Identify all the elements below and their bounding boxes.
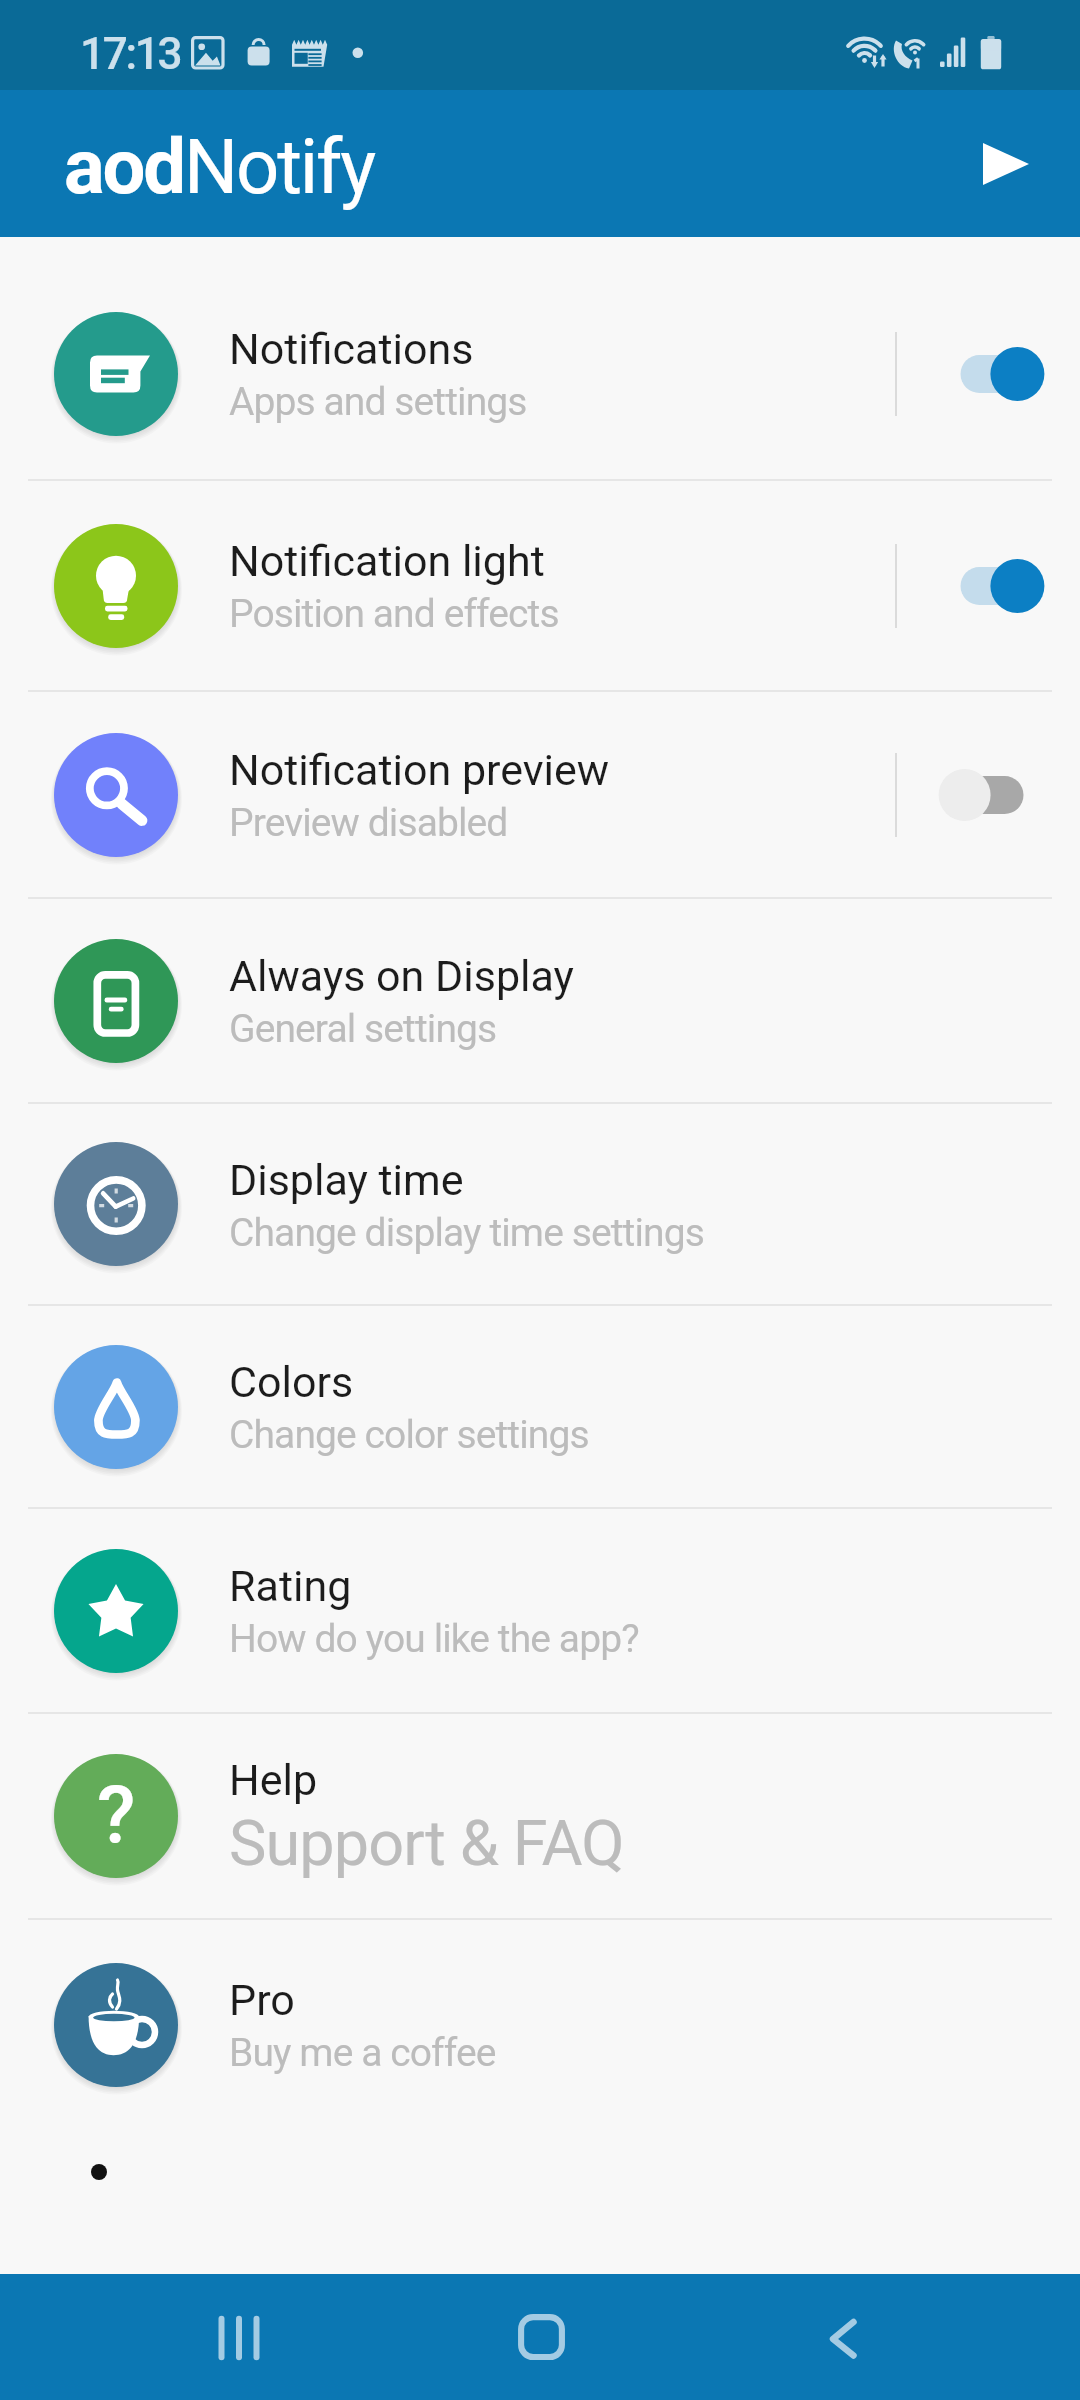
button[interactable]: Always on Display [0,899,1080,1102]
button[interactable]: Rating [0,1509,1080,1712]
button[interactable]: Toggle Notification light [897,544,1080,628]
button[interactable]: Display time [0,1104,1080,1304]
staticText: Preview disabled [229,796,508,847]
staticText: aod [64,122,184,211]
button[interactable]: Play [954,112,1058,216]
button[interactable]: Home [360,2274,720,2400]
staticText: General settings [229,1002,497,1053]
staticText: Change color settings [229,1408,589,1459]
button[interactable]: Toggle Notifications [897,332,1080,416]
button[interactable]: Back [720,2274,1080,2400]
staticText: Pro [229,1972,295,2026]
staticText: Notifications [229,321,474,375]
staticText: Notify [184,122,375,211]
staticText: Notification preview [229,742,610,796]
button[interactable]: Toggle Notification preview [897,753,1080,837]
button[interactable]: ? [0,1714,1080,1918]
staticText: Always on Display [229,948,574,1002]
staticText: Notification light [229,533,545,587]
staticText: Help [229,1752,318,1806]
staticText: ? [97,1770,136,1863]
staticText: 17:13 [80,28,181,80]
staticText: Buy me a coffee [229,2026,496,2077]
staticText: Colors [229,1354,354,1408]
staticText: Position and effects [229,587,559,638]
button[interactable]: Notifications [0,268,1080,479]
staticText: Apps and settings [229,375,527,426]
button[interactable]: Colors [0,1306,1080,1507]
button[interactable]: Recents [0,2274,360,2400]
staticText: Change display time settings [229,1206,704,1257]
staticText: Rating [229,1558,352,1612]
staticText: Display time [229,1152,464,1206]
button[interactable]: Notification light [0,481,1080,690]
button[interactable]: Pro [0,1920,1080,2129]
staticText: Support & FAQ [229,1806,624,1881]
staticText: How do you like the app? [229,1612,639,1663]
button[interactable]: Notification preview [0,692,1080,897]
